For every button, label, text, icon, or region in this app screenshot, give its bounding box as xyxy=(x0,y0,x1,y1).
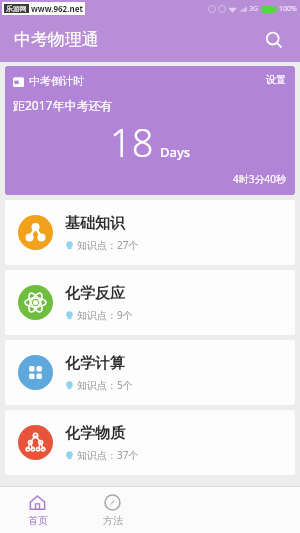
button[interactable]: 基础知识 xyxy=(5,200,295,265)
staticText: 化学物质 xyxy=(65,424,125,443)
staticText: 4时3分40秒 xyxy=(233,172,286,186)
staticText: 中考倒计时 xyxy=(29,74,84,88)
button[interactable]: 中考倒计时 xyxy=(5,66,295,195)
button[interactable]: Search xyxy=(258,24,290,56)
staticText: 知识点：37个 xyxy=(77,448,139,462)
staticText: 方法 xyxy=(103,514,123,527)
staticText: 化学计算 xyxy=(65,354,125,373)
button[interactable]: 首页 xyxy=(0,487,75,533)
staticText: 设置 xyxy=(266,73,286,86)
staticText: 中考物理通 xyxy=(14,29,99,50)
button[interactable]: 化学计算 xyxy=(5,340,295,405)
button[interactable]: 化学物质 xyxy=(5,410,295,475)
staticText: 知识点：27个 xyxy=(77,238,139,252)
staticText: 基础知识 xyxy=(65,214,125,233)
button[interactable]: 设置 xyxy=(263,70,289,89)
staticText: 知识点：9个 xyxy=(77,308,133,322)
staticText: 100% xyxy=(279,4,297,14)
staticText: 首页 xyxy=(28,514,48,527)
button[interactable]: 化学反应 xyxy=(5,270,295,335)
staticText: www.962.net xyxy=(31,3,83,14)
staticText: 知识点：5个 xyxy=(77,378,133,392)
staticText: 乐游网 xyxy=(6,4,27,13)
button[interactable]: 方法 xyxy=(75,487,150,533)
staticText: 化学反应 xyxy=(65,284,125,303)
staticText: 3G xyxy=(249,4,259,14)
staticText: Days xyxy=(160,143,191,161)
staticText: 18 xyxy=(110,116,154,168)
staticText: 距2017年中考还有 xyxy=(13,97,113,113)
